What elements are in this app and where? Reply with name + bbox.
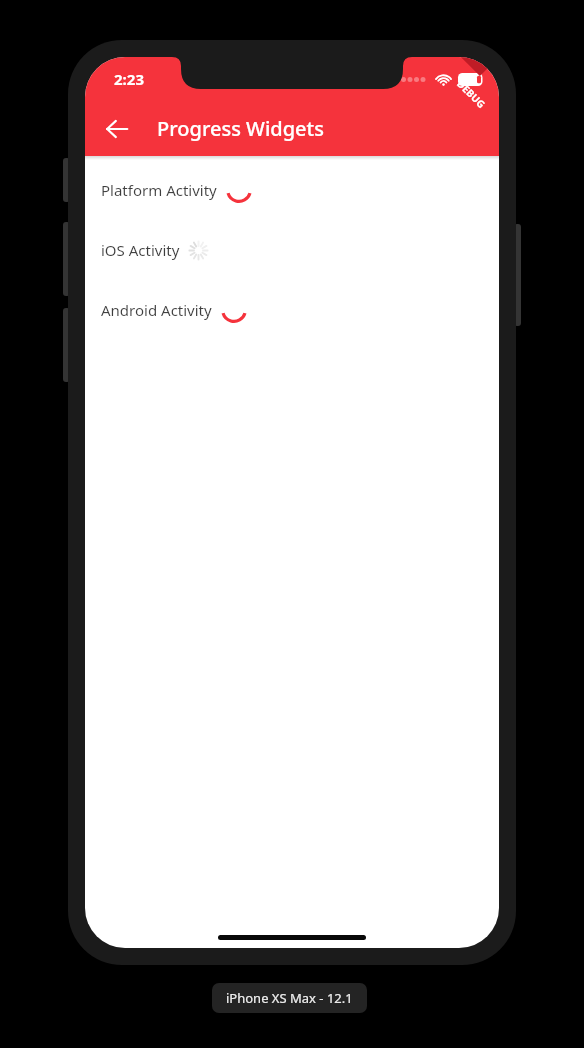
button[interactable]: iOS Activity	[85, 231, 499, 269]
staticText: iPhone XS Max - 12.1	[226, 989, 353, 1007]
staticText: Progress Widgets	[157, 115, 324, 142]
button[interactable]: Android Activity	[85, 291, 499, 329]
staticText: 2:23	[114, 69, 144, 89]
staticText: Android Activity	[101, 300, 212, 320]
staticText: iOS Activity	[101, 240, 180, 260]
staticText: DEBUG	[454, 77, 489, 111]
staticText: Platform Activity	[101, 180, 217, 200]
button[interactable]: Back	[93, 105, 141, 153]
button[interactable]: Platform Activity	[85, 171, 499, 209]
